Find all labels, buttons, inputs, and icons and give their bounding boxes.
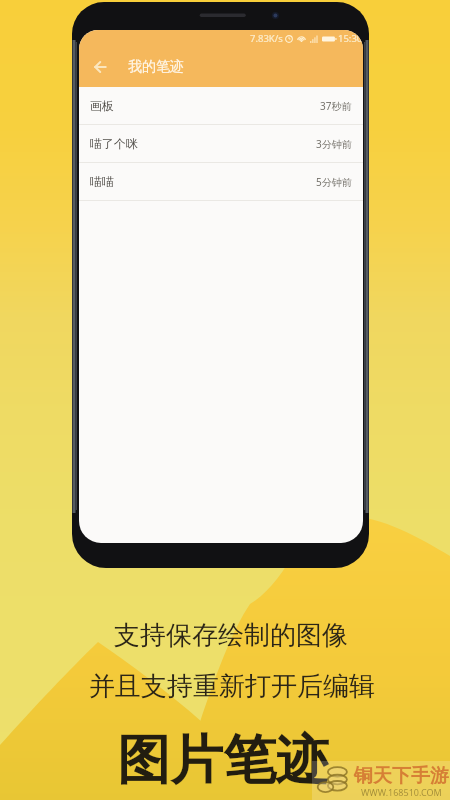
staticText: 并且支持重新打开后编辑	[89, 670, 375, 703]
staticText: 37秒前	[320, 99, 352, 113]
staticText: 15:30	[338, 32, 363, 45]
button[interactable]: 喵喵	[79, 163, 363, 200]
staticText: 7.83K/s	[250, 32, 283, 45]
staticText: 喵了个咪	[90, 136, 138, 151]
staticText: 3分钟前	[316, 137, 352, 151]
staticText: 支持保存绘制的图像	[114, 619, 348, 652]
staticText: 喵喵	[90, 174, 114, 189]
staticText: 5分钟前	[316, 175, 352, 189]
staticText: 画板	[90, 98, 114, 113]
staticText: 图片笔迹	[117, 727, 329, 794]
staticText: WWW.168510.COM	[361, 786, 442, 798]
staticText: 我的笔迹	[128, 58, 184, 76]
staticText: 铜天下手游	[354, 764, 449, 788]
button[interactable]: Back	[84, 51, 116, 83]
button[interactable]: 画板	[79, 87, 363, 124]
button[interactable]: 喵了个咪	[79, 125, 363, 162]
